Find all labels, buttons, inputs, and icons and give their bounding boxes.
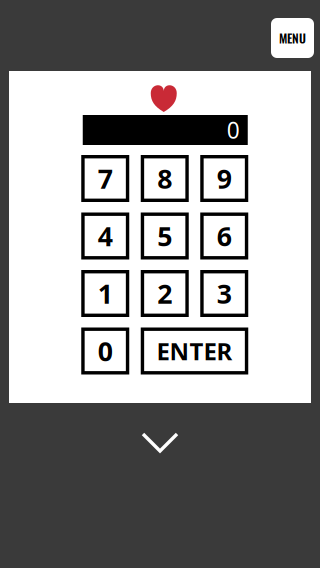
staticText: ENTER xyxy=(156,335,232,367)
staticText: 5 xyxy=(157,218,172,254)
button[interactable]: 1 xyxy=(81,270,129,317)
button[interactable]: 8 xyxy=(141,155,189,202)
button[interactable]: MENU xyxy=(271,18,314,58)
button[interactable]: Scroll down xyxy=(143,434,177,451)
button[interactable]: 4 xyxy=(81,212,129,259)
staticText: 2 xyxy=(157,276,172,311)
staticText: 4 xyxy=(98,218,113,254)
button[interactable]: ENTER xyxy=(141,327,248,374)
staticText: 1 xyxy=(98,276,113,311)
staticText: 3 xyxy=(217,276,232,311)
button[interactable]: 7 xyxy=(81,155,129,202)
staticText: 8 xyxy=(157,161,172,196)
staticText: 6 xyxy=(217,218,232,254)
staticText: MENU xyxy=(279,29,306,47)
button[interactable]: 3 xyxy=(200,270,248,317)
button[interactable]: 2 xyxy=(141,270,189,317)
button[interactable]: 0 xyxy=(81,327,129,374)
staticText: 7 xyxy=(98,161,113,196)
button[interactable]: 6 xyxy=(200,212,248,259)
staticText: 0 xyxy=(227,115,240,145)
staticText: 9 xyxy=(217,161,232,196)
button[interactable]: 5 xyxy=(141,212,189,259)
button[interactable]: 9 xyxy=(200,155,248,202)
staticText: 0 xyxy=(98,333,113,369)
